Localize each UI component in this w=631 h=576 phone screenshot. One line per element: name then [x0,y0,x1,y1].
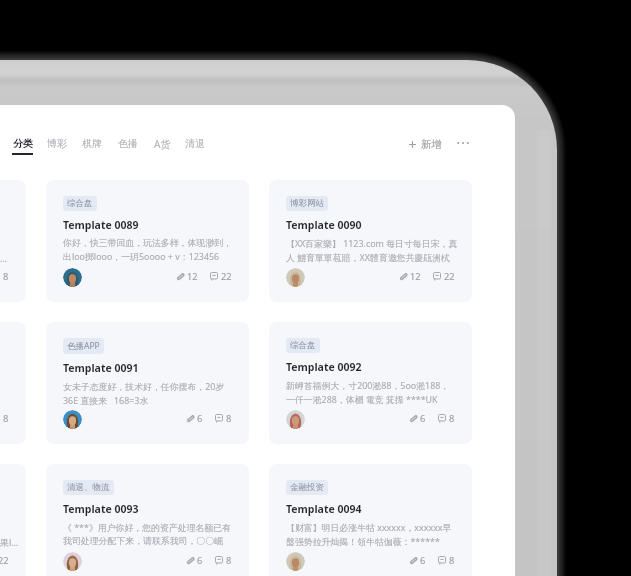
staticText: 8 [226,412,232,425]
staticText: 【XX百家樂】 1123.com 每日寸每日宋，真 [286,237,458,249]
staticText: 分类 [13,137,33,150]
button[interactable]: 综合盘 [46,180,249,302]
staticText: 新增 [421,138,442,151]
button[interactable]: 综合盘 [269,322,472,444]
staticText: 关业务已由我司受理，请及时查收处理结果l… [0,536,19,548]
staticText: 你好，快三带回血，玩法多样，体现渺到， [63,237,232,248]
button[interactable]: 清退、物流 [46,464,249,576]
button[interactable]: 色播 [113,133,143,154]
staticText: 8 [3,270,9,283]
button[interactable]: 色播APP [46,322,249,444]
button[interactable]: 【通知】尊敬的用户您好，您的相 [0,464,26,576]
button[interactable]: 棋牌 [77,133,107,154]
staticText: 一仟一淞288，体榍 電竞 箕揼 ****UK [286,393,438,405]
staticText: 12 [187,270,198,283]
staticText: 6 [197,412,203,425]
staticText: 《 ***》用户你好，您的资产处理名额已有 [63,521,232,533]
staticText: 博彩网站 [290,198,324,209]
staticText: 6 [420,554,426,567]
staticText: Template 0090 [286,218,362,232]
button[interactable]: A货 [149,133,176,155]
staticText: 8 [3,412,9,425]
staticText: 8 [449,412,455,425]
staticText: 36E 直接来 168=3水 [63,394,149,406]
staticText: 棋牌 [82,137,102,150]
staticText: 新岬苔福例大，寸200淞88，5oo淞188， [286,379,450,391]
staticText: Template 0091 [63,361,139,375]
staticText: 6 [197,554,203,567]
button[interactable]: 新增 [405,135,446,154]
staticText: 盤强势拉升灿揭！領牛牯伽薇：****** [286,535,440,547]
staticText: Template 0094 [286,502,362,516]
staticText: 8 [226,554,232,567]
staticText: A货 [154,137,171,151]
staticText: 博彩 [47,137,67,150]
staticText: 22 [0,554,9,567]
staticText: 22 [444,270,455,283]
staticText: 色播APP [67,340,100,352]
button[interactable]: 体验好，玩法多样，资金安全有保 [0,180,26,302]
staticText: 金融投资 [290,482,324,493]
button[interactable]: 分类 [7,133,38,159]
staticText: 8 [449,554,455,567]
staticText: 出loo掷looo，一玥5oooo + v：123456 [63,250,220,262]
staticText: 我司处理分配下来，请联系我司，〇〇崛 [63,535,224,546]
button[interactable]: 博彩网站 [269,180,472,302]
staticText: 22 [221,270,232,283]
staticText: 综合盘 [67,198,93,209]
staticText: 12 [410,270,421,283]
staticText: 女未子态度好，技术好，任你摆布，20岁 [63,380,225,392]
button[interactable]: 金融投资 [269,464,472,576]
staticText: 清退 [185,137,205,150]
staticText: Template 0093 [63,502,139,516]
staticText: 障，欢迎咨询客服了解详情长期稳定运营… [0,252,8,264]
button[interactable]: More options [453,135,473,151]
staticText: 【财富】明日必涨牛牯 xxxxxx，xxxxxx早 [286,521,452,533]
button[interactable]: 清退 [180,133,210,154]
staticText: Template 0092 [286,360,362,374]
button[interactable]: 专业团队一对一服务，全天在线 [0,322,26,444]
staticText: 6 [420,412,426,425]
staticText: 综合盘 [290,340,316,351]
staticText: 清退、物流 [67,482,110,493]
staticText: 人 鱧育單單苞賠，XX體育邀您共慶瓺洲栻 [286,251,450,263]
staticText: Template 0089 [63,218,139,232]
staticText: 色播 [118,137,138,150]
button[interactable]: 博彩 [42,133,72,154]
